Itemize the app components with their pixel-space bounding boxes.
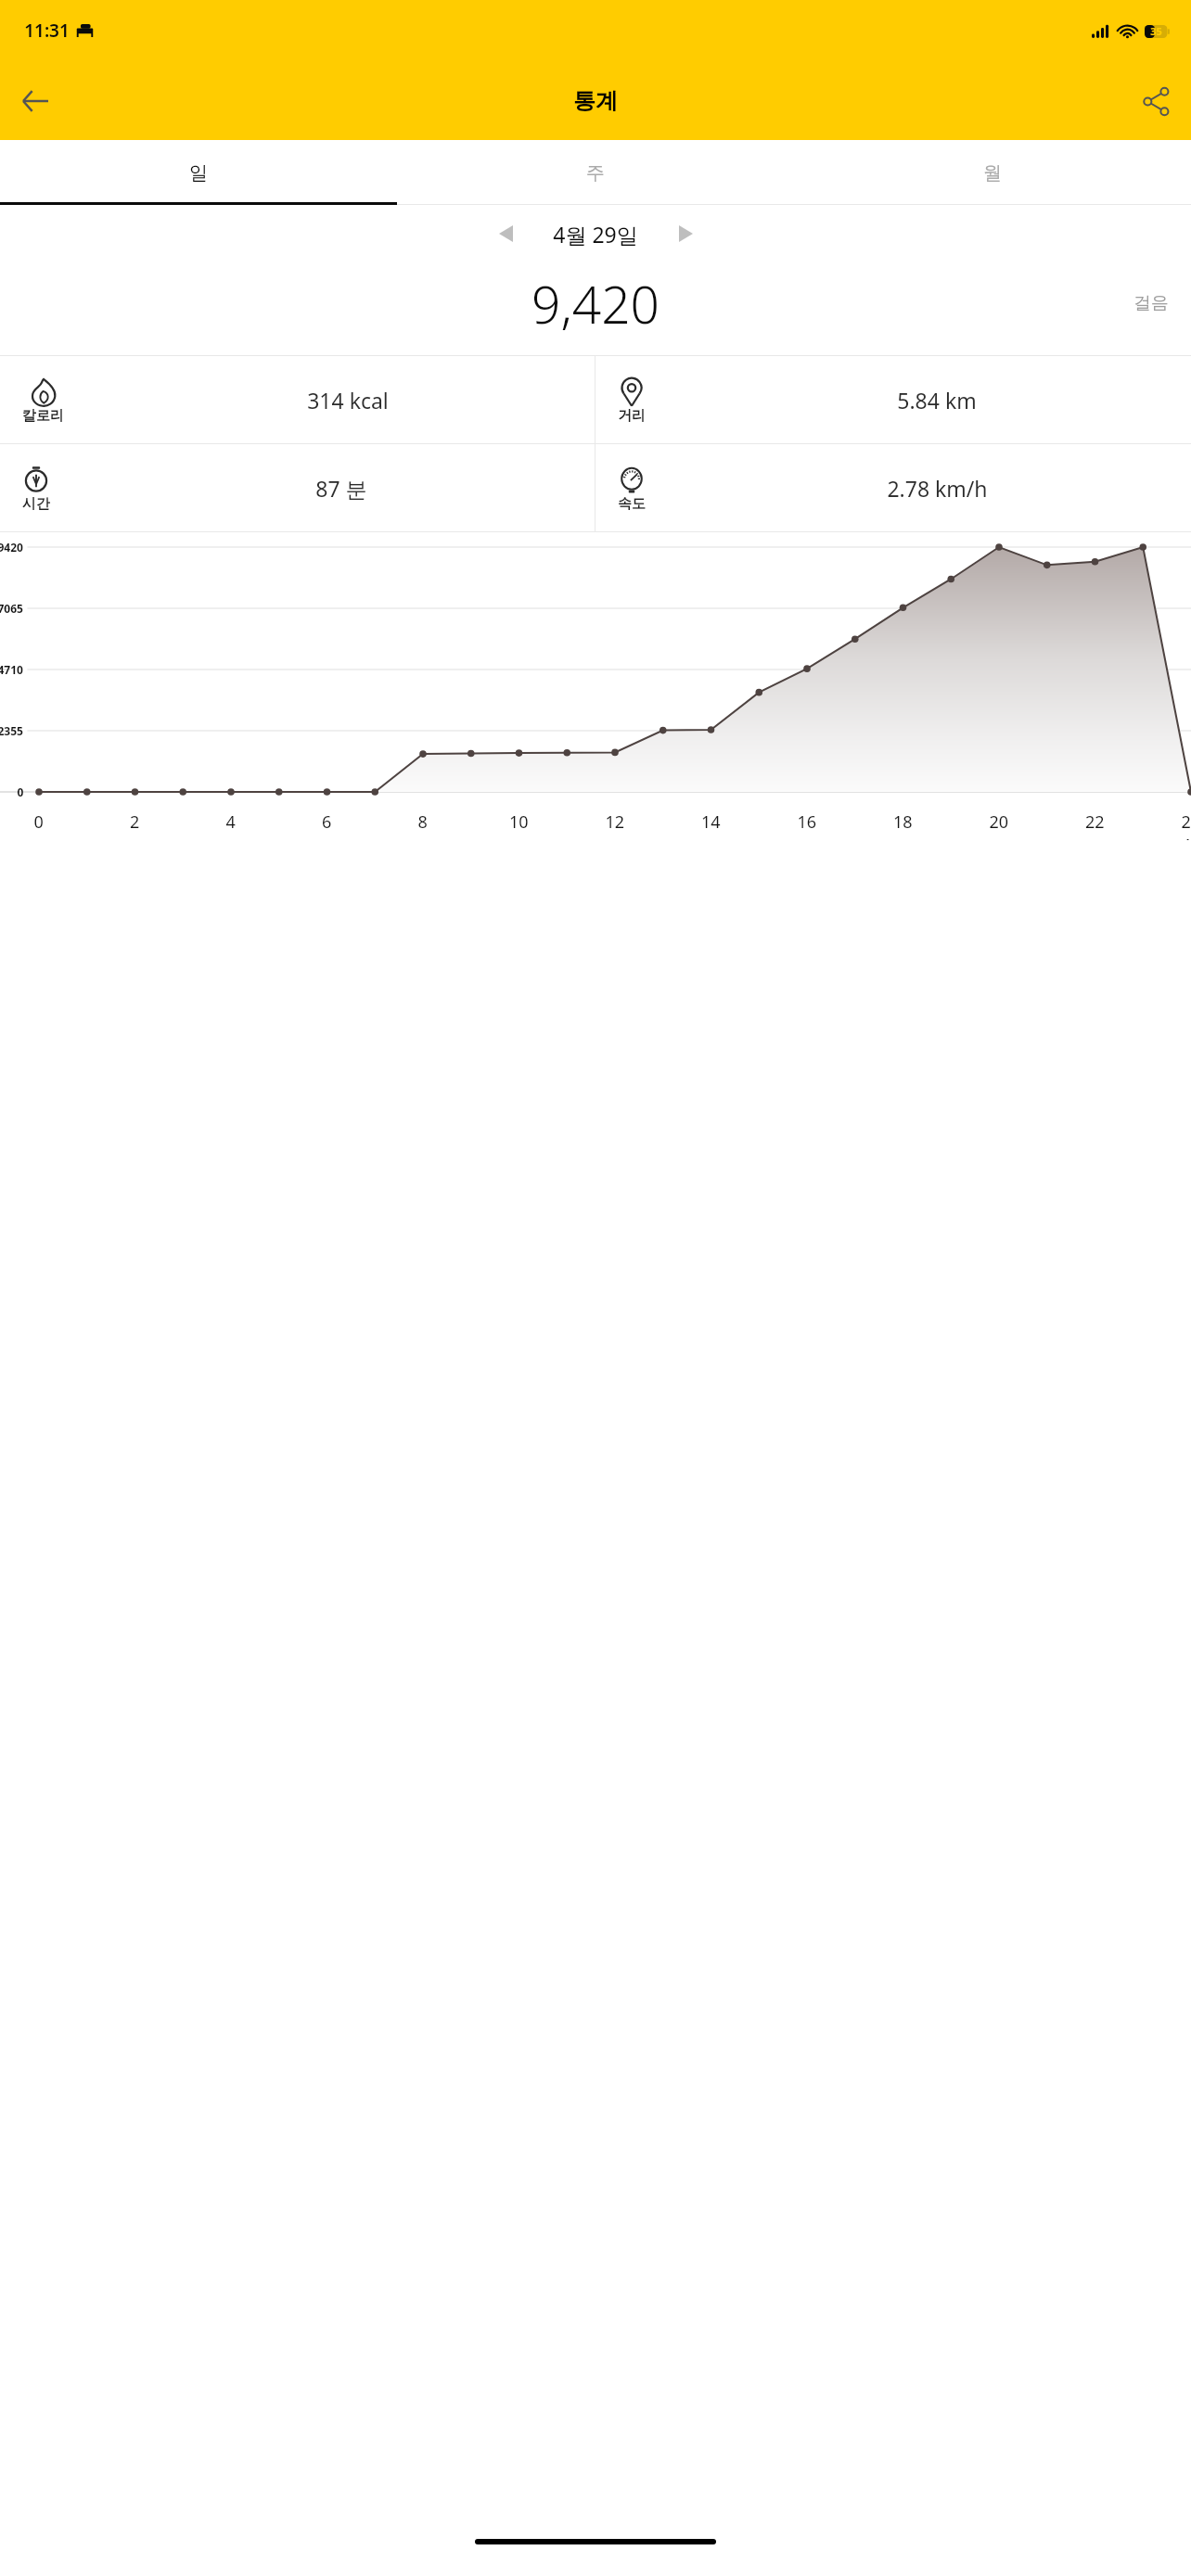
button[interactable]: 시간	[0, 444, 595, 531]
button[interactable]: Previous day	[480, 209, 531, 259]
staticText: 314 kcal	[307, 386, 389, 414]
staticText: 거리	[618, 407, 646, 425]
staticText: 4월 29일	[553, 220, 638, 249]
staticText: 시간	[22, 495, 50, 513]
button[interactable]: Back	[0, 66, 70, 136]
staticText: 2.78 km/h	[887, 474, 988, 503]
staticText: 걸음	[1133, 292, 1169, 314]
staticText: 11:31	[24, 19, 70, 43]
staticText: 일	[189, 161, 208, 185]
button[interactable]: Share	[1121, 66, 1191, 136]
button[interactable]: 칼로리	[0, 356, 595, 443]
button[interactable]: 월	[794, 140, 1191, 205]
staticText: 87 분	[315, 474, 367, 503]
button[interactable]: 속도	[595, 444, 1191, 531]
staticText: 칼로리	[22, 407, 64, 425]
button[interactable]: Next day	[660, 209, 711, 259]
staticText: 월	[983, 161, 1002, 185]
staticText: 통계	[573, 87, 618, 115]
button[interactable]: 일	[0, 140, 397, 205]
staticText: 35	[1150, 24, 1162, 38]
button[interactable]: 주	[397, 140, 794, 205]
staticText: 주	[586, 161, 605, 185]
staticText: 속도	[618, 495, 646, 513]
staticText: 5.84 km	[897, 386, 977, 414]
button[interactable]: 거리	[595, 356, 1191, 443]
staticText: 9,420	[531, 269, 660, 338]
